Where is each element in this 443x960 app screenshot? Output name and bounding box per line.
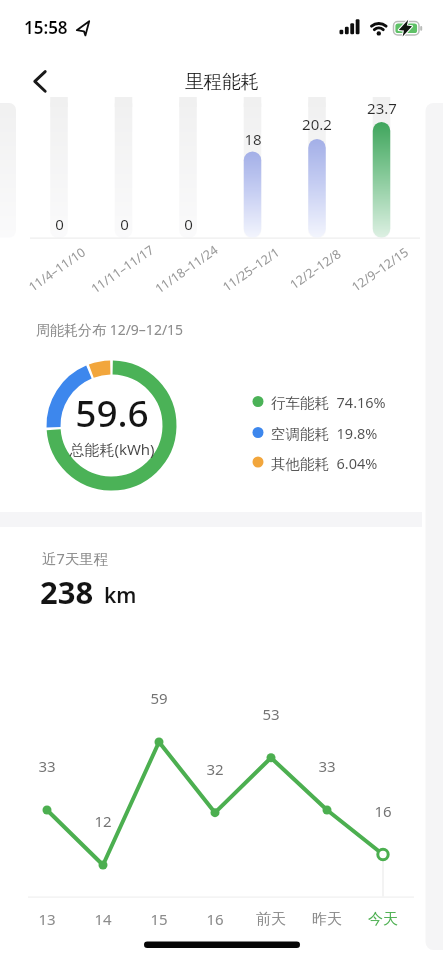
staticText: 32 (206, 759, 224, 779)
staticText: 16 (206, 909, 224, 929)
staticText: 53 (262, 704, 280, 724)
staticText: 今天 (368, 910, 398, 929)
staticText: 14 (94, 909, 112, 929)
staticText: 近7天里程 (42, 548, 109, 568)
staticText: 238 (40, 571, 94, 613)
staticText: 0 (120, 214, 129, 234)
staticText: 33 (38, 756, 56, 776)
staticText: 0 (184, 214, 193, 234)
staticText: 里程能耗 (185, 70, 259, 93)
staticText: 0 (55, 214, 64, 234)
staticText: 59.6 (75, 387, 149, 437)
staticText: 18 (244, 129, 262, 149)
staticText: 23.7 (367, 98, 397, 118)
staticText: 59 (150, 688, 168, 708)
staticText: 昨天 (312, 910, 342, 929)
staticText: 11/11–11/17 (88, 241, 157, 297)
staticText: km (104, 581, 137, 610)
staticText: 12/9–12/15 (348, 244, 412, 295)
staticText: 行车能耗 74.16% (271, 392, 386, 412)
staticText: 11/18–11/24 (152, 241, 221, 297)
staticText: 11/4–11/10 (25, 244, 89, 295)
staticText: 16 (374, 801, 392, 821)
staticText: 12 (94, 811, 112, 831)
staticText: 11/25–12/1 (219, 244, 283, 295)
staticText: 15 (150, 909, 168, 929)
staticText: 空调能耗 19.8% (271, 423, 378, 443)
staticText: 15:58 (24, 16, 68, 39)
staticText: 总能耗(kWh) (69, 439, 155, 459)
staticText: 20.2 (302, 114, 332, 134)
staticText: 前天 (256, 910, 286, 929)
button[interactable] (24, 62, 64, 102)
staticText: 12/2–12/8 (286, 245, 344, 293)
staticText: 33 (318, 756, 336, 776)
staticText: 13 (38, 909, 56, 929)
staticText: 周能耗分布 12/9–12/15 (36, 320, 184, 339)
staticText: 其他能耗 6.04% (271, 453, 378, 473)
